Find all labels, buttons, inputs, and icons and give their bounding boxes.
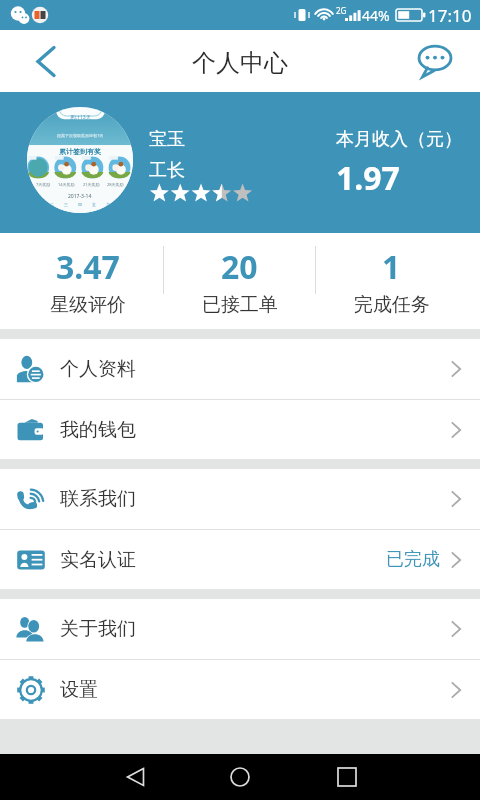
staticText: 3.47 [56, 245, 120, 289]
button[interactable]: 我的钱包 [0, 400, 480, 459]
staticText: 设置 [60, 678, 98, 702]
staticText: 星级评价 [50, 293, 126, 317]
staticText: 二 [50, 202, 54, 207]
staticText: 三 [64, 202, 68, 207]
staticText: 2017-3-14 [68, 193, 92, 200]
staticText: 关于我们 [60, 617, 136, 641]
staticText: 1.97 [336, 156, 400, 200]
staticText: 21天奖励 [83, 182, 100, 187]
button[interactable]: 3.47 [12, 233, 163, 329]
button[interactable]: 联系我们 [0, 469, 480, 529]
button[interactable]: Home [218, 755, 262, 799]
button[interactable]: Back [22, 37, 70, 85]
staticText: 20 [221, 245, 258, 289]
staticText: 2G [336, 5, 347, 16]
staticText: 距离下次领取奖品还有1天 [57, 133, 104, 138]
staticText: 实名认证 [60, 548, 136, 572]
staticText: 五 [92, 202, 96, 207]
staticText: 个人中心 [192, 48, 288, 78]
button[interactable]: 1 [316, 233, 467, 329]
staticText: 宝玉 [149, 128, 185, 151]
staticText: 个人资料 [60, 357, 136, 381]
staticText: 我的钱包 [60, 418, 136, 442]
staticText: 已完成 [386, 548, 440, 571]
staticText: 工长 [149, 159, 185, 182]
button[interactable]: 设置 [0, 660, 480, 719]
staticText: 1 [382, 245, 401, 289]
staticText: 14天奖励 [58, 182, 75, 187]
button[interactable]: Recents [325, 755, 369, 799]
button[interactable]: 实名认证 [0, 530, 480, 589]
staticText: 28天奖励 [107, 182, 124, 187]
staticText: 累计签到有奖 [59, 147, 101, 156]
button[interactable]: Back [113, 755, 157, 799]
staticText: 44% [362, 6, 390, 25]
staticText: 17:10 [428, 4, 472, 27]
staticText: 六 [106, 202, 110, 207]
button[interactable]: 20 [164, 233, 315, 329]
button[interactable]: Avatar [27, 107, 133, 213]
staticText: 累计13天 [70, 114, 91, 121]
staticText: 本月收入（元） [336, 128, 462, 151]
staticText: 已接工单 [202, 293, 278, 317]
button[interactable]: Messages [413, 39, 457, 83]
button[interactable]: 个人资料 [0, 339, 480, 399]
staticText: 7天奖励 [36, 182, 51, 187]
staticText: 联系我们 [60, 487, 136, 511]
staticText: 四 [78, 202, 82, 207]
staticText: 完成任务 [354, 293, 430, 317]
button[interactable]: 关于我们 [0, 599, 480, 659]
